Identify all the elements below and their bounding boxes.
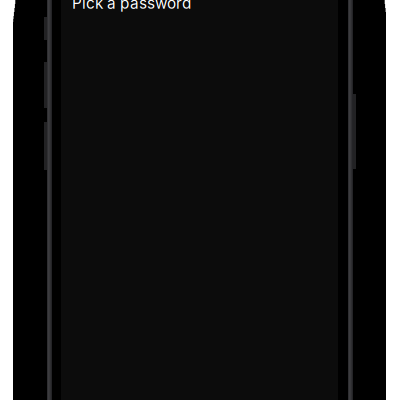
staticText: Pick a password bbox=[72, 0, 191, 13]
